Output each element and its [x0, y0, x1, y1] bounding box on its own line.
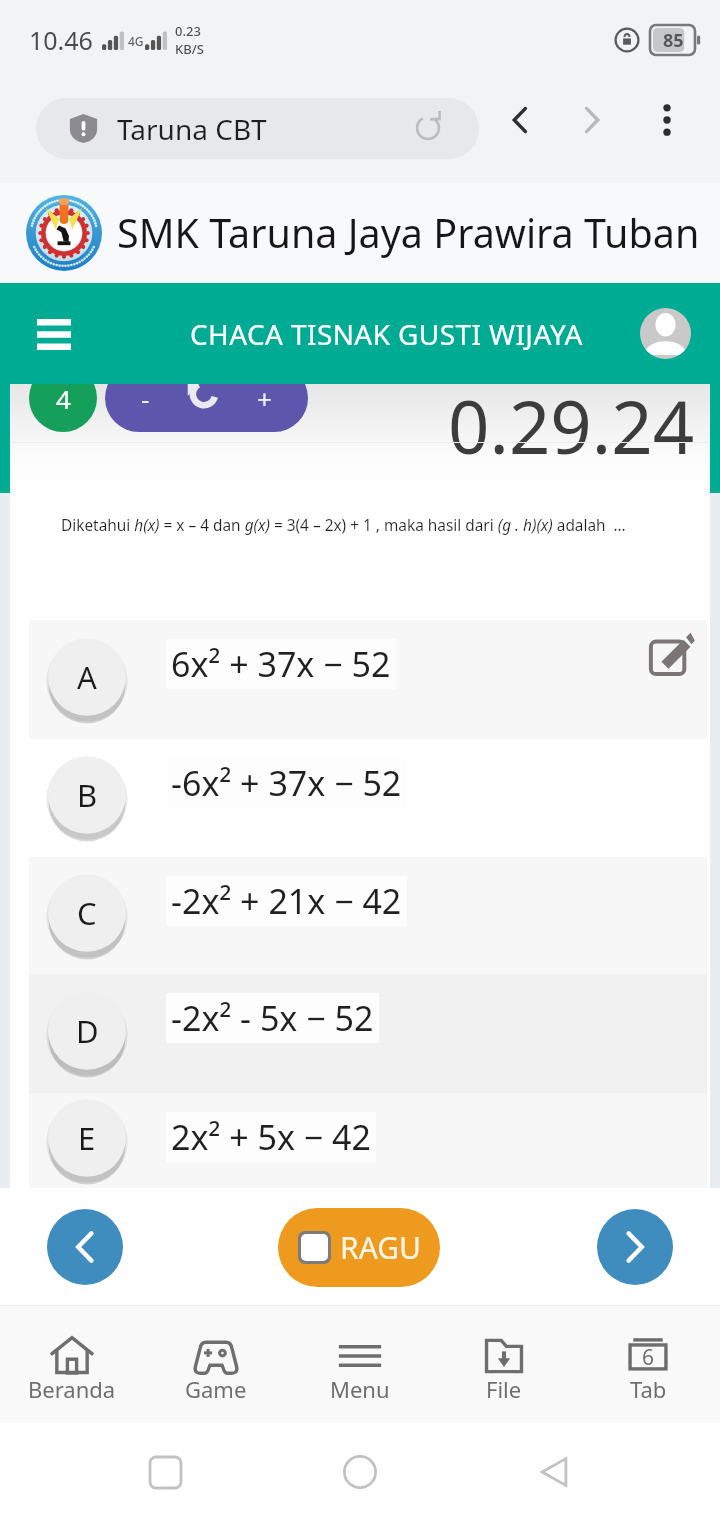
other: Reload: [411, 111, 445, 145]
button[interactable]: Next question: [597, 1209, 673, 1285]
staticText: 4G: [128, 33, 144, 49]
staticText: E: [78, 1117, 96, 1159]
staticText: C: [77, 892, 97, 934]
button[interactable]: B: [29, 739, 707, 857]
button[interactable]: D: [29, 974, 707, 1093]
button[interactable]: Previous question: [47, 1209, 123, 1285]
staticText: -2x² - 5x − 52: [171, 995, 374, 1041]
button[interactable]: File: [432, 1306, 576, 1423]
staticText: 4: [56, 381, 71, 416]
staticText: -: [141, 381, 150, 416]
button[interactable]: E: [29, 1093, 707, 1188]
button[interactable]: Edit answer: [642, 623, 702, 683]
button[interactable]: Home: [332, 1444, 388, 1500]
button[interactable]: More options: [638, 91, 696, 149]
button[interactable]: Account: [640, 308, 691, 359]
button[interactable]: Back: [527, 1444, 583, 1500]
button[interactable]: 4: [29, 364, 97, 432]
button[interactable]: Recents: [137, 1444, 193, 1500]
button[interactable]: Taruna CBT: [36, 98, 479, 159]
staticText: 0.23: [175, 22, 201, 40]
button[interactable]: C: [29, 857, 707, 974]
staticText: Tab: [630, 1374, 667, 1404]
staticText: -6x² + 37x − 52: [171, 760, 402, 806]
staticText: +: [257, 381, 272, 416]
staticText: 6: [642, 1343, 655, 1372]
staticText: KB/S: [175, 40, 204, 58]
staticText: File: [486, 1374, 522, 1404]
button[interactable]: A: [29, 620, 707, 739]
button[interactable]: RAGU: [278, 1208, 440, 1287]
staticText: Diketahui h(x) = x – 4 dan g(x) = 3(4 – …: [61, 515, 626, 536]
staticText: -2x² + 21x − 42: [171, 878, 402, 924]
staticText: Menu: [330, 1374, 390, 1404]
staticText: SMK Taruna Jaya Prawira Tuban: [117, 206, 700, 260]
staticText: Game: [185, 1374, 247, 1404]
staticText: RAGU: [340, 1227, 421, 1268]
button[interactable]: Open navigation menu: [20, 300, 88, 368]
staticText: Taruna CBT: [117, 110, 267, 148]
staticText: 2x² + 5x − 42: [171, 1114, 371, 1160]
staticText: A: [77, 656, 97, 698]
staticText: CHACA TISNAK GUSTI WIJAYA: [190, 315, 583, 353]
button[interactable]: Menu: [288, 1306, 432, 1423]
button[interactable]: 6: [576, 1306, 720, 1423]
button[interactable]: -: [105, 364, 308, 432]
button[interactable]: Beranda: [0, 1306, 144, 1423]
staticText: 10.46: [29, 23, 93, 57]
button[interactable]: Back: [491, 91, 549, 149]
button[interactable]: Game: [144, 1306, 288, 1423]
staticText: 6x² + 37x − 52: [171, 641, 391, 687]
staticText: 85: [663, 28, 684, 53]
other: Refresh: [187, 377, 221, 411]
staticText: D: [76, 1010, 99, 1052]
button[interactable]: Forward: [563, 91, 621, 149]
staticText: Beranda: [28, 1374, 116, 1404]
staticText: B: [77, 774, 98, 816]
staticText: 0.29.24: [448, 376, 695, 475]
